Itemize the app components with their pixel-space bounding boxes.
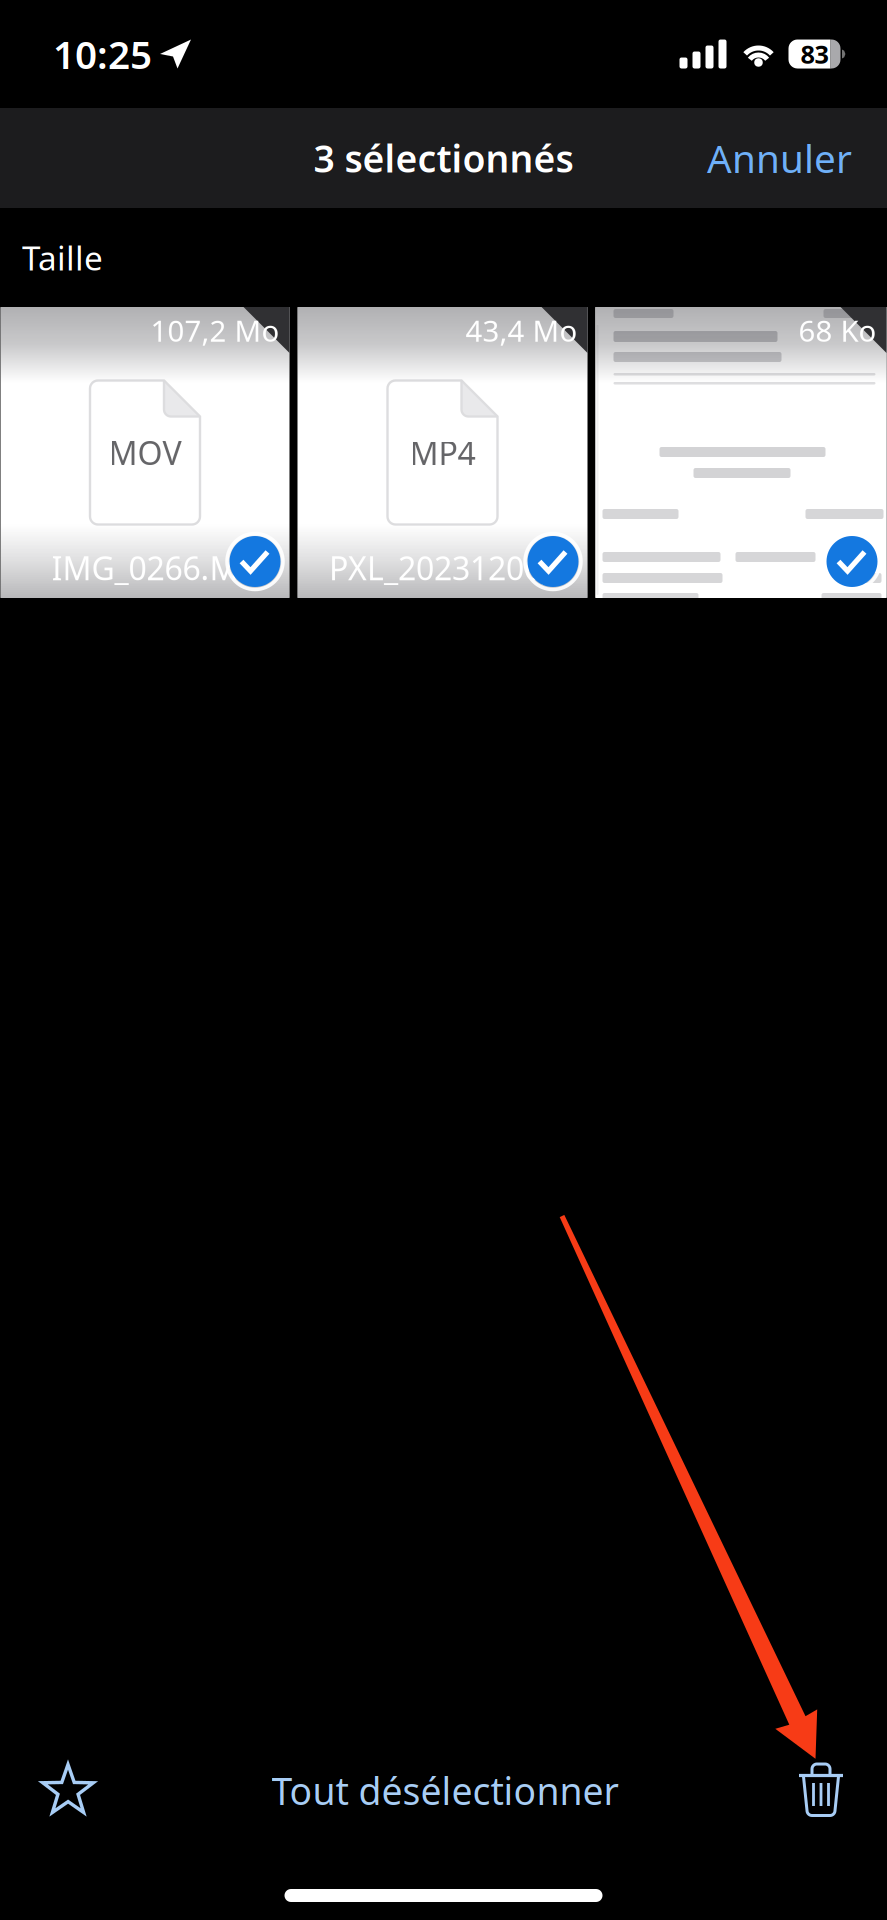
staticText: Tout désélectionner	[271, 1766, 618, 1815]
staticText: 68 Ko	[798, 311, 876, 350]
staticText: 3 sélectionnés	[313, 133, 573, 183]
button[interactable]: MP4	[297, 307, 587, 598]
button[interactable]: Favoris	[24, 1746, 112, 1834]
button[interactable]: 68 Ko	[595, 307, 886, 598]
staticText: PXL_20231206_	[329, 546, 556, 589]
staticText: MOV	[108, 431, 181, 474]
staticText: IMG_0266.M	[51, 546, 238, 589]
staticText: 83	[800, 37, 828, 71]
staticText: Taille	[22, 235, 103, 280]
button[interactable]: MOV	[0, 307, 289, 598]
button[interactable]: Tout désélectionner	[255, 1744, 634, 1837]
staticText: 107,2 Mo	[150, 311, 279, 350]
staticText: 10:25	[53, 28, 152, 80]
staticText: Annuler	[707, 132, 852, 184]
staticText: 43,4 Mo	[465, 311, 577, 350]
button[interactable]: Annuler	[693, 118, 866, 198]
button[interactable]: Supprimer	[778, 1747, 864, 1834]
staticText: MP4	[409, 431, 475, 474]
